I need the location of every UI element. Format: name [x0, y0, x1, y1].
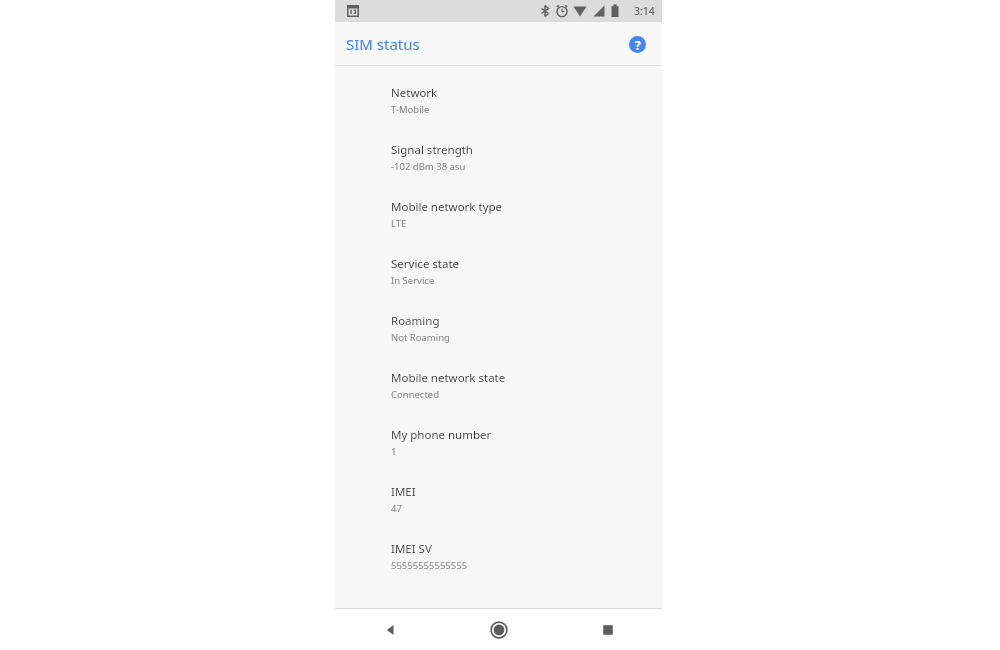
staticText: Signal strength [391, 142, 473, 158]
button[interactable]: Network [335, 80, 662, 137]
staticText: SIM status [346, 34, 420, 54]
button[interactable]: IMEI SV [335, 536, 662, 593]
staticText: IMEI SV [391, 541, 432, 557]
staticText: Not Roaming [391, 331, 450, 344]
staticText: Service state [391, 256, 460, 272]
staticText: ? [635, 37, 641, 53]
staticText: LTE [391, 217, 407, 230]
staticText: 1 [391, 445, 397, 458]
button[interactable]: Back [335, 609, 444, 650]
staticText: 47 [391, 502, 402, 515]
staticText: 3:14 [634, 4, 655, 18]
button[interactable]: Service state [335, 251, 662, 308]
staticText: Network [391, 85, 438, 101]
button[interactable]: Mobile network type [335, 194, 662, 251]
button[interactable]: IMEI [335, 479, 662, 536]
button[interactable]: Home [444, 609, 553, 650]
staticText: Roaming [391, 313, 440, 329]
button[interactable]: Signal strength [335, 137, 662, 194]
button[interactable]: Mobile network state [335, 365, 662, 422]
button[interactable]: Help [622, 29, 652, 59]
button[interactable]: My phone number [335, 422, 662, 479]
staticText: In Service [391, 274, 435, 287]
staticText: -102 dBm 38 asu [391, 160, 466, 173]
staticText: Mobile network type [391, 199, 503, 215]
staticText: T-Mobile [391, 103, 430, 116]
button[interactable]: Roaming [335, 308, 662, 365]
staticText: 55555555555555 [391, 559, 468, 572]
staticText: IMEI [391, 484, 416, 500]
staticText: My phone number [391, 427, 492, 443]
staticText: Mobile network state [391, 370, 506, 386]
button[interactable]: Recent apps [553, 609, 662, 650]
staticText: Connected [391, 388, 440, 401]
